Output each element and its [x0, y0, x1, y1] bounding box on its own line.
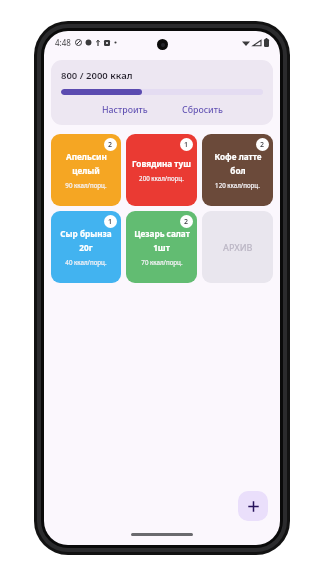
staticText: 90 ккал/порц.: [65, 181, 107, 189]
staticText: 70 ккал/порц.: [141, 258, 183, 266]
staticText: Говядина туш: [132, 158, 191, 169]
staticText: 2: [108, 140, 113, 150]
staticText: 1: [184, 140, 189, 150]
button[interactable]: Цезарь салат: [126, 211, 197, 283]
staticText: 20г: [79, 242, 93, 253]
staticText: бол: [230, 165, 246, 176]
staticText: 800 / 2000 ккал: [61, 69, 133, 82]
button[interactable]: Сыр брынза: [51, 211, 121, 283]
staticText: целый: [72, 165, 100, 176]
staticText: 1шт: [153, 242, 170, 253]
staticText: 2: [260, 140, 265, 150]
button[interactable]: АРХИВ: [202, 211, 273, 283]
button[interactable]: Настроить: [94, 100, 156, 120]
button[interactable]: Говядина туш: [126, 134, 197, 206]
staticText: 200 ккал/порц.: [139, 174, 184, 182]
staticText: 2: [184, 217, 189, 227]
button[interactable]: Сбросить: [174, 100, 231, 120]
staticText: Цезарь салат: [134, 228, 190, 239]
staticText: 4:48: [55, 37, 71, 48]
staticText: Настроить: [102, 104, 148, 116]
staticText: Сыр брынза: [60, 228, 112, 239]
staticText: 1: [108, 217, 113, 227]
staticText: Сбросить: [182, 104, 223, 116]
button[interactable]: Кофе латте: [202, 134, 273, 206]
button[interactable]: Апельсин: [51, 134, 121, 206]
staticText: 120 ккал/порц.: [215, 181, 260, 189]
staticText: Кофе латте: [214, 151, 262, 162]
staticText: АРХИВ: [223, 241, 253, 253]
button[interactable]: Add food: [238, 491, 268, 521]
staticText: 40 ккал/порц.: [65, 258, 107, 266]
staticText: Апельсин: [66, 151, 107, 162]
